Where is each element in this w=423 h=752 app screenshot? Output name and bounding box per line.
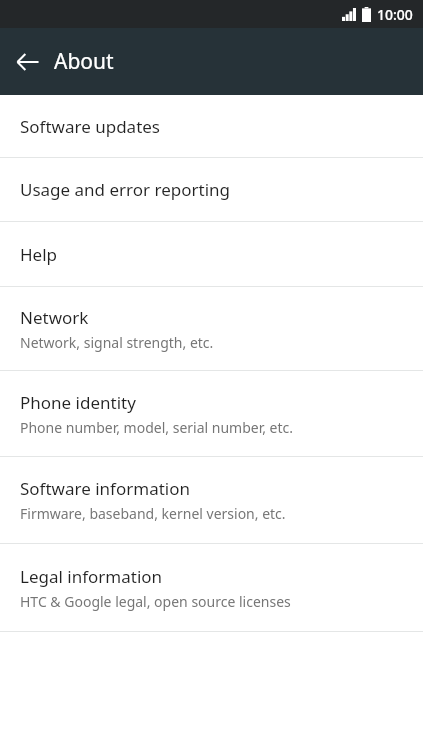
button[interactable]: Legal information: [0, 544, 423, 631]
staticText: Firmware, baseband, kernel version, etc.: [20, 504, 286, 523]
button[interactable]: Usage and error reporting: [0, 158, 423, 221]
staticText: Help: [20, 243, 58, 266]
button[interactable]: Software information: [0, 457, 423, 543]
staticText: Usage and error reporting: [20, 178, 231, 201]
staticText: HTC & Google legal, open source licenses: [20, 592, 291, 611]
staticText: Network: [20, 306, 89, 329]
button[interactable]: Software updates: [0, 95, 423, 157]
button[interactable]: Help: [0, 222, 423, 286]
button[interactable]: Back: [6, 40, 50, 84]
button[interactable]: Phone identity: [0, 371, 423, 456]
staticText: Software updates: [20, 115, 161, 138]
staticText: Phone identity: [20, 391, 136, 414]
staticText: Legal information: [20, 565, 163, 588]
staticText: About: [54, 47, 114, 76]
button[interactable]: Network: [0, 287, 423, 370]
staticText: 10:00: [377, 5, 413, 24]
staticText: Software information: [20, 477, 190, 500]
staticText: Phone number, model, serial number, etc.: [20, 418, 294, 437]
staticText: Network, signal strength, etc.: [20, 333, 214, 352]
